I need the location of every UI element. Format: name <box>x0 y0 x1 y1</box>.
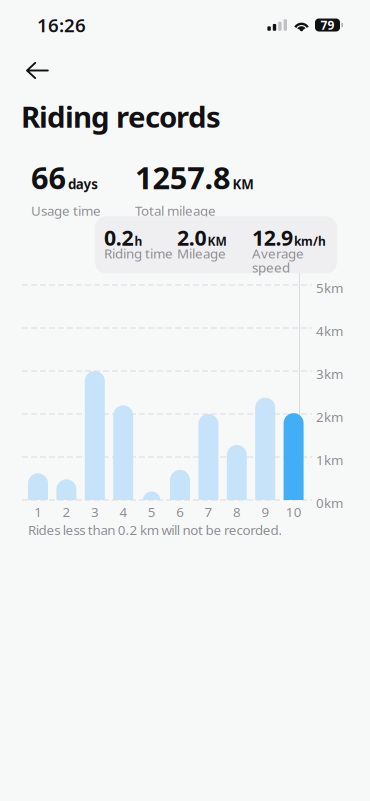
staticText: speed <box>252 258 290 276</box>
staticText: Riding time <box>104 244 173 262</box>
staticText: 2 <box>63 503 71 521</box>
staticText: 1km <box>316 451 343 469</box>
button[interactable]: Back <box>0 46 65 91</box>
staticText: Mileage <box>177 244 226 262</box>
staticText: Riding records <box>21 97 221 136</box>
staticText: days <box>68 175 98 193</box>
staticText: 8 <box>233 503 241 521</box>
staticText: Total mileage <box>135 202 216 219</box>
staticText: 2km <box>316 408 343 426</box>
staticText: 7 <box>205 503 213 521</box>
staticText: KM <box>232 175 254 193</box>
staticText: 5km <box>316 279 343 297</box>
staticText: 66 <box>31 157 66 198</box>
staticText: 4km <box>316 322 343 340</box>
staticText: 10 <box>286 503 302 521</box>
staticText: 1 <box>34 503 42 521</box>
staticText: 3km <box>316 365 343 383</box>
staticText: 3 <box>91 503 99 521</box>
staticText: h <box>134 233 142 249</box>
staticText: 16:26 <box>37 13 86 37</box>
staticText: 4 <box>119 503 127 521</box>
staticText: Usage time <box>31 202 101 219</box>
staticText: KM <box>207 233 226 249</box>
staticText: 79 <box>320 17 334 33</box>
staticText: 1257.8 <box>135 157 231 198</box>
staticText: 0km <box>316 494 343 512</box>
staticText: 9 <box>261 503 269 521</box>
staticText: 0.2 <box>104 223 133 252</box>
staticText: 5 <box>148 503 156 521</box>
staticText: km/h <box>294 233 326 249</box>
staticText: 12.9 <box>252 223 293 252</box>
staticText: 2.0 <box>177 223 206 252</box>
staticText: Rides less than 0.2 km will not be recor… <box>28 521 282 539</box>
staticText: 6 <box>176 503 184 521</box>
staticText: Average <box>252 244 304 262</box>
